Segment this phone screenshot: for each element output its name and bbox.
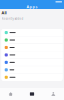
button[interactable]: [1, 44, 62, 51]
button[interactable]: Profile: [43, 88, 64, 100]
staticText: Recently added: [2, 17, 24, 20]
button[interactable]: [1, 51, 62, 59]
button[interactable]: [1, 66, 62, 73]
button[interactable]: Home: [0, 88, 21, 100]
staticText: Apps: [26, 4, 37, 9]
button[interactable]: Library: [21, 88, 43, 100]
button[interactable]: [1, 59, 62, 66]
button[interactable]: [1, 74, 62, 81]
button[interactable]: [1, 29, 62, 36]
staticText: All: [2, 10, 7, 15]
button[interactable]: [1, 36, 62, 44]
